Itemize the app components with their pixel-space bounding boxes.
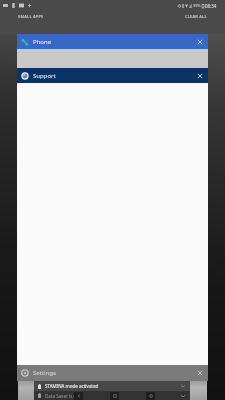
button[interactable]: Close Support	[193, 68, 207, 83]
staticText: Phone	[33, 38, 52, 46]
button[interactable]: Data Saver is on	[34, 391, 190, 400]
button[interactable]: CLEAR ALL	[185, 14, 207, 19]
button[interactable]: Phone	[17, 34, 208, 49]
staticText: Settings	[33, 369, 56, 377]
button[interactable]: Close Settings	[193, 365, 207, 381]
button[interactable]: Settings	[17, 365, 208, 381]
button[interactable]: Back	[74, 392, 83, 400]
button[interactable]: STAMINA mode activated	[34, 381, 190, 391]
button[interactable]: Support	[17, 68, 208, 83]
button[interactable]: Home	[110, 392, 119, 400]
staticText: CLEAR ALL	[185, 14, 207, 19]
staticText: SMALL APPS	[18, 14, 44, 19]
button[interactable]: Recent apps	[146, 392, 155, 400]
staticText: 35%	[193, 3, 201, 8]
staticText: STAMINA mode activated	[45, 383, 99, 389]
staticText: Support	[33, 72, 56, 80]
staticText: Data Saver is on	[45, 393, 79, 399]
button[interactable]: SMALL APPS	[18, 14, 44, 19]
staticText: 08:34	[205, 3, 217, 9]
button[interactable]: Close Phone	[193, 34, 207, 49]
